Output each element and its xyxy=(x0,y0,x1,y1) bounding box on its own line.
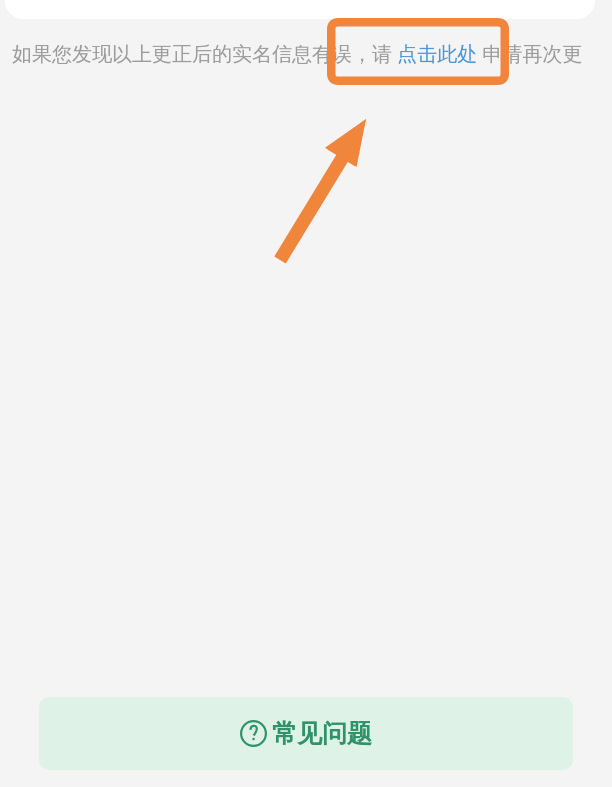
button[interactable]: 常见问题 xyxy=(39,697,573,770)
button[interactable]: Highlighted link area xyxy=(327,18,509,85)
staticText: 如果您发现以上更正后的实名信息有误，请 点击此处 申请再次更改 xyxy=(12,40,587,67)
staticText: 常见问题 xyxy=(272,718,372,749)
